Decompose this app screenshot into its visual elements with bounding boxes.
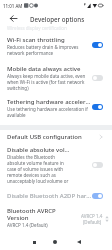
- button[interactable]: Toggle: [92, 75, 103, 81]
- staticText: Bluetooth AVRCP Version: [7, 207, 58, 222]
- staticText: Wireless display certification: [7, 25, 67, 31]
- staticText: Default USB configuration: [7, 133, 82, 141]
- staticText: Mobile data always active: [7, 65, 81, 73]
- staticText: AVRCP 1.4: [81, 213, 103, 219]
- button[interactable]: Back: [72, 235, 86, 249]
- button[interactable]: Tethering hardware acceleration: [0, 95, 112, 120]
- button[interactable]: Toggle: [92, 104, 103, 110]
- button[interactable]: Disable Bluetooth A2DP hardware offload: [0, 189, 112, 203]
- staticText: Disables the Bluetooth absolute volume f…: [7, 154, 73, 185]
- staticText: Disable Bluetooth A2DP hardware offload: [7, 192, 92, 200]
- staticText: Disable absolute volume: [7, 146, 73, 154]
- button[interactable]: Toggle: [92, 42, 103, 48]
- button[interactable]: Disable absolute volume: [0, 143, 112, 185]
- button[interactable]: Wi-Fi scan throttling: [0, 33, 112, 58]
- button[interactable]: Home: [48, 235, 62, 249]
- button[interactable]: Toggle: [92, 162, 103, 168]
- button[interactable]: Mobile data always active: [0, 62, 112, 93]
- staticText: AVRCP 1.4 (Default): [7, 222, 48, 228]
- staticText: Developer options: [30, 15, 85, 23]
- button[interactable]: Toggle: [92, 193, 103, 199]
- staticText: (Default): [83, 219, 102, 225]
- button[interactable]: AVRCP 1.4: [81, 213, 109, 225]
- button[interactable]: Recents: [27, 235, 41, 249]
- staticText: Always keep mobile data active, even whe…: [7, 73, 92, 91]
- staticText: Tethering hardware acceleration: [7, 98, 92, 106]
- staticText: 11:01 AM: [3, 3, 23, 9]
- button[interactable]: Back: [5, 11, 21, 26]
- staticText: Wi-Fi scan throttling: [7, 36, 65, 44]
- staticText: Reduces battery drain & improves network…: [7, 44, 92, 56]
- button[interactable]: Default USB configuration: [0, 130, 112, 144]
- staticText: Use tethering hardware acceleration if a…: [7, 106, 92, 118]
- button[interactable]: Bluetooth AVRCP Version: [0, 204, 112, 232]
